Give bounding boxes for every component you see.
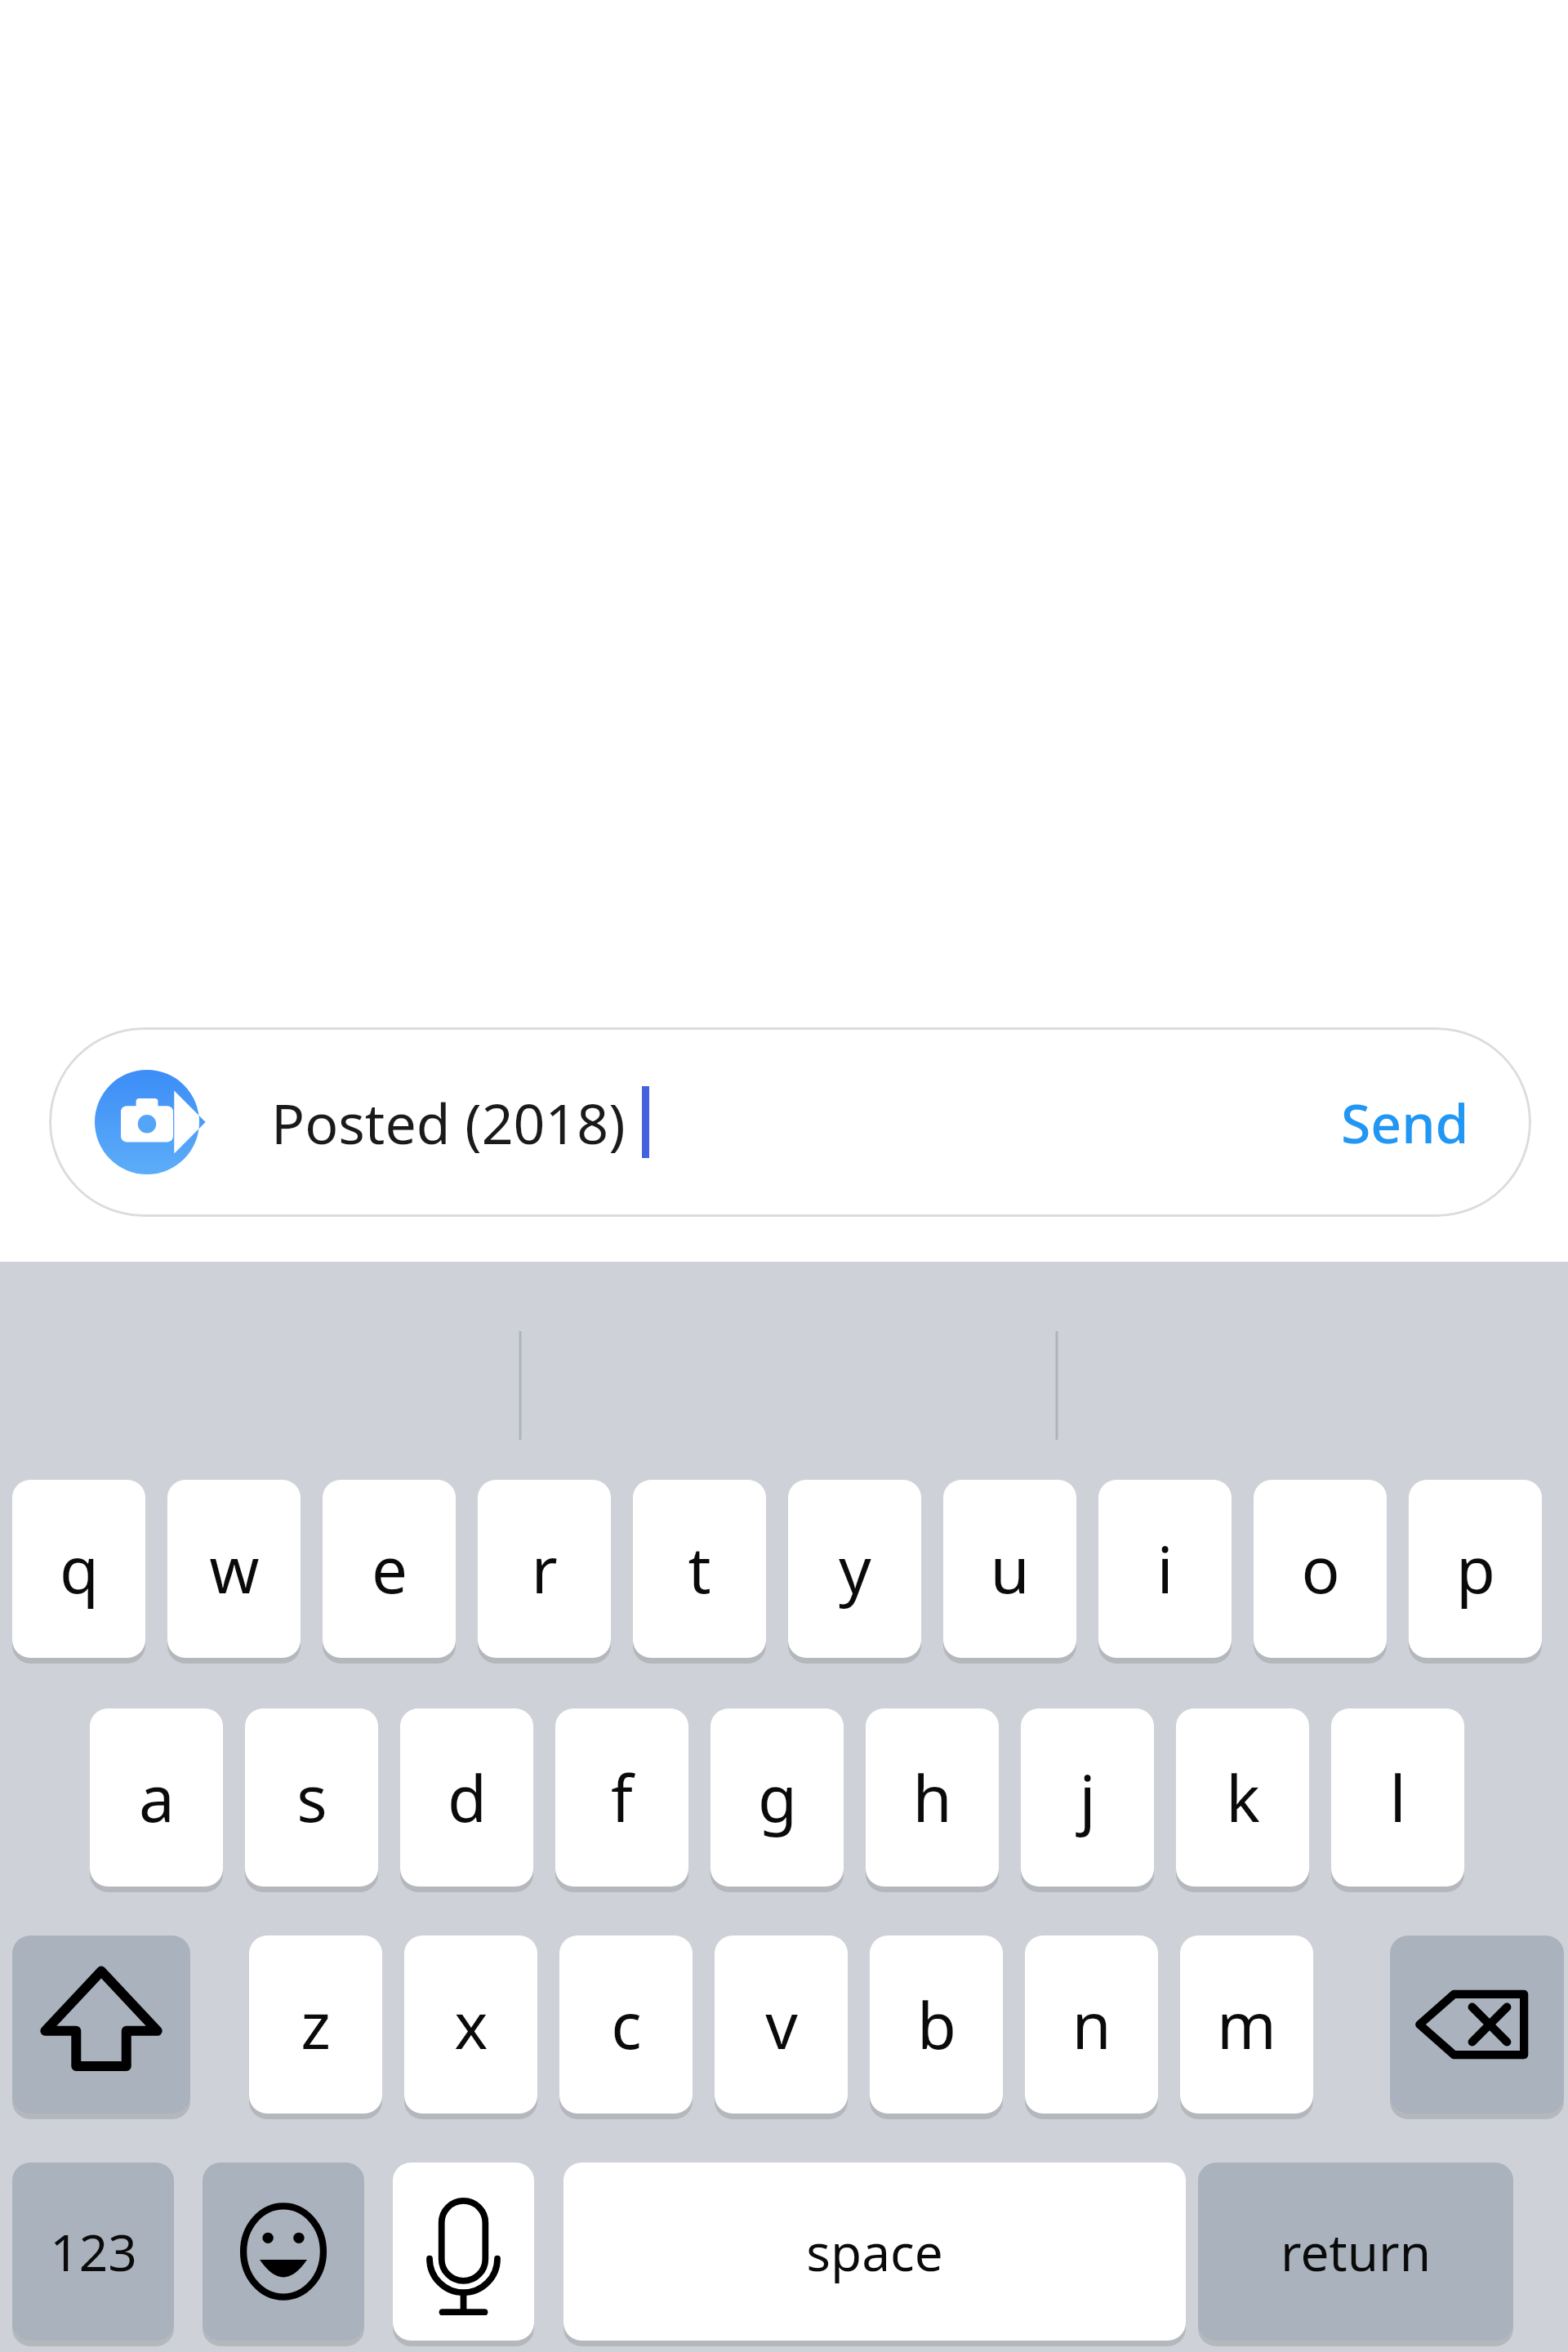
staticText: m bbox=[1217, 1981, 1276, 2068]
button[interactable]: l bbox=[1331, 1708, 1464, 1886]
button[interactable]: w bbox=[167, 1480, 301, 1658]
button[interactable]: j bbox=[1021, 1708, 1154, 1886]
staticText: z bbox=[301, 1981, 331, 2068]
staticText: Send bbox=[1341, 1085, 1469, 1159]
staticText: f bbox=[611, 1754, 633, 1841]
button[interactable]: Backspace bbox=[1390, 1935, 1564, 2114]
staticText: Posted (2018) bbox=[271, 1085, 626, 1160]
button[interactable]: q bbox=[12, 1480, 145, 1658]
button[interactable]: y bbox=[788, 1480, 921, 1658]
button[interactable]: Send bbox=[1326, 1069, 1484, 1175]
button[interactable]: s bbox=[245, 1708, 378, 1886]
staticText: t bbox=[688, 1526, 711, 1612]
staticText: w bbox=[209, 1526, 260, 1612]
staticText: d bbox=[448, 1754, 487, 1841]
button[interactable]: n bbox=[1025, 1935, 1158, 2114]
button[interactable]: h bbox=[866, 1708, 999, 1886]
staticText: q bbox=[60, 1526, 99, 1612]
staticText: o bbox=[1301, 1526, 1340, 1612]
button[interactable]: v bbox=[715, 1935, 848, 2114]
staticText: s bbox=[296, 1754, 327, 1841]
staticText: j bbox=[1079, 1754, 1096, 1841]
button[interactable]: Camera bbox=[49, 1027, 1531, 1217]
button[interactable]: r bbox=[478, 1480, 611, 1658]
staticText: g bbox=[758, 1754, 797, 1841]
staticText: l bbox=[1389, 1754, 1406, 1841]
button[interactable]: f bbox=[555, 1708, 688, 1886]
button[interactable]: m bbox=[1180, 1935, 1313, 2114]
staticText: u bbox=[990, 1526, 1030, 1612]
staticText: n bbox=[1071, 1981, 1111, 2068]
button[interactable]: o bbox=[1254, 1480, 1387, 1658]
button[interactable]: 123 bbox=[12, 2163, 174, 2341]
staticText: space bbox=[806, 2217, 943, 2286]
button[interactable]: return bbox=[1198, 2163, 1513, 2341]
staticText: h bbox=[912, 1754, 952, 1841]
button[interactable]: t bbox=[633, 1480, 766, 1658]
button[interactable]: Voice input bbox=[393, 2163, 534, 2341]
button[interactable]: x bbox=[404, 1935, 537, 2114]
staticText: p bbox=[1456, 1526, 1495, 1612]
button[interactable]: b bbox=[870, 1935, 1003, 2114]
button[interactable]: c bbox=[559, 1935, 693, 2114]
button[interactable]: Emoji bbox=[203, 2163, 364, 2341]
button[interactable]: z bbox=[249, 1935, 382, 2114]
staticText: r bbox=[531, 1526, 558, 1612]
staticText: b bbox=[917, 1981, 956, 2068]
staticText: k bbox=[1226, 1754, 1260, 1841]
button[interactable]: Camera bbox=[95, 1070, 199, 1174]
staticText: v bbox=[765, 1981, 798, 2068]
button[interactable]: a bbox=[90, 1708, 223, 1886]
button[interactable]: u bbox=[943, 1480, 1076, 1658]
button[interactable]: d bbox=[400, 1708, 533, 1886]
button[interactable]: space bbox=[563, 2163, 1186, 2341]
button[interactable]: p bbox=[1409, 1480, 1542, 1658]
staticText: e bbox=[372, 1526, 408, 1612]
button[interactable]: g bbox=[710, 1708, 844, 1886]
staticText: c bbox=[611, 1981, 642, 2068]
button[interactable]: i bbox=[1098, 1480, 1232, 1658]
staticText: i bbox=[1156, 1526, 1174, 1612]
staticText: return bbox=[1281, 2217, 1431, 2286]
button[interactable]: Shift bbox=[12, 1935, 190, 2114]
staticText: 123 bbox=[50, 2217, 137, 2286]
button[interactable]: k bbox=[1176, 1708, 1309, 1886]
staticText: x bbox=[454, 1981, 488, 2068]
button[interactable]: e bbox=[323, 1480, 456, 1658]
staticText: a bbox=[139, 1754, 175, 1841]
staticText: y bbox=[839, 1526, 871, 1612]
